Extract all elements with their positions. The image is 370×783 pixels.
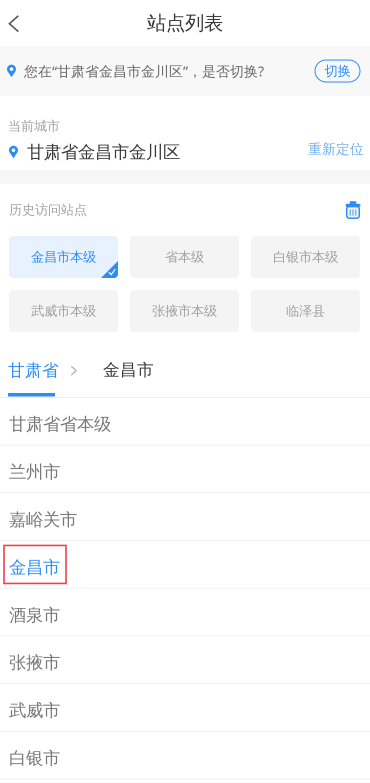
- staticText: 白银市本级: [273, 249, 338, 265]
- staticText: 甘肃省: [8, 360, 59, 381]
- staticText: 白银市: [9, 747, 60, 769]
- button[interactable]: 酒泉市: [0, 589, 370, 636]
- staticText: 金昌市: [103, 359, 154, 380]
- staticText: 张掖市本级: [152, 303, 217, 319]
- button[interactable]: 武威市本级: [9, 290, 118, 332]
- button[interactable]: 清空历史记录: [334, 193, 370, 227]
- staticText: 您在“甘肃省金昌市金川区”，是否切换?: [24, 62, 264, 80]
- staticText: 武威市本级: [31, 303, 96, 319]
- staticText: 甘肃省金昌市金川区: [27, 141, 180, 163]
- staticText: 省本级: [165, 249, 204, 265]
- staticText: 站点列表: [147, 11, 223, 35]
- button[interactable]: 重新定位: [299, 135, 370, 169]
- staticText: 武威市: [9, 700, 60, 721]
- button[interactable]: 武威市: [0, 684, 370, 732]
- staticText: 金昌市: [9, 556, 60, 578]
- staticText: 酒泉市: [9, 604, 60, 626]
- button[interactable]: 下级: [63, 345, 85, 397]
- button[interactable]: 金昌市本级: [9, 236, 118, 278]
- staticText: 临泽县: [286, 303, 325, 319]
- button[interactable]: 临泽县: [251, 290, 360, 332]
- button[interactable]: 金昌市: [85, 345, 166, 397]
- button[interactable]: 省本级: [130, 236, 239, 278]
- button[interactable]: 甘肃省: [0, 345, 63, 397]
- staticText: 嘉峪关市: [9, 509, 77, 531]
- button[interactable]: 张掖市本级: [130, 290, 239, 332]
- button[interactable]: 切换: [315, 60, 360, 82]
- button[interactable]: 金昌市: [0, 541, 370, 589]
- staticText: 甘肃省省本级: [9, 413, 111, 435]
- staticText: 历史访问站点: [9, 202, 87, 218]
- staticText: 当前城市: [8, 118, 60, 134]
- staticText: 张掖市: [9, 652, 60, 674]
- button[interactable]: 嘉峪关市: [0, 493, 370, 541]
- button[interactable]: 白银市: [0, 732, 370, 780]
- staticText: 重新定位: [308, 140, 364, 158]
- button[interactable]: 张掖市: [0, 636, 370, 684]
- button[interactable]: 兰州市: [0, 446, 370, 493]
- staticText: 切换: [324, 63, 350, 79]
- button[interactable]: 甘肃省省本级: [0, 398, 370, 446]
- staticText: 金昌市本级: [31, 249, 96, 265]
- button[interactable]: 白银市本级: [251, 236, 360, 278]
- staticText: 兰州市: [9, 461, 60, 483]
- button[interactable]: 返回: [0, 0, 30, 46]
